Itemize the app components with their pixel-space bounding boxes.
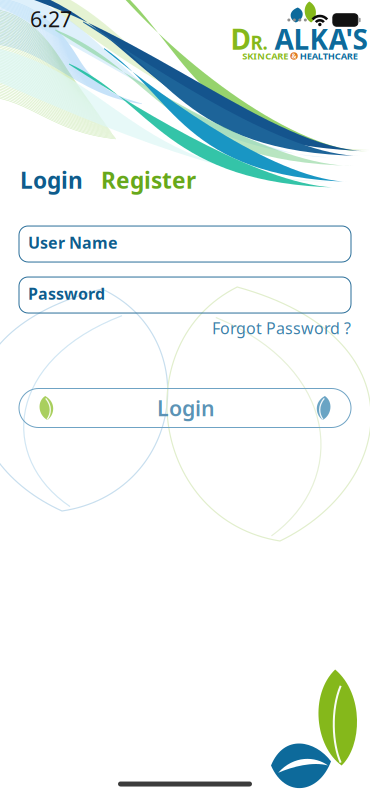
staticText: R. bbox=[250, 30, 267, 55]
staticText: SKINCARE bbox=[242, 50, 288, 62]
button[interactable]: Login bbox=[19, 388, 351, 427]
staticText: Login bbox=[157, 394, 215, 422]
staticText: 6:27 bbox=[30, 5, 72, 33]
staticText: & bbox=[291, 52, 296, 60]
staticText: Register bbox=[101, 165, 196, 195]
button[interactable]: Forgot Password ? bbox=[212, 317, 351, 339]
staticText: D bbox=[230, 20, 250, 58]
staticText: User Name bbox=[28, 232, 118, 253]
button[interactable]: Register bbox=[101, 165, 196, 195]
staticText: Password bbox=[28, 283, 105, 304]
staticText: HEALTHCARE bbox=[300, 50, 358, 62]
staticText: ALKA'S bbox=[267, 20, 367, 58]
staticText: Login bbox=[20, 165, 83, 195]
button[interactable]: Login bbox=[20, 165, 83, 195]
staticText: Forgot Password ? bbox=[212, 317, 351, 339]
